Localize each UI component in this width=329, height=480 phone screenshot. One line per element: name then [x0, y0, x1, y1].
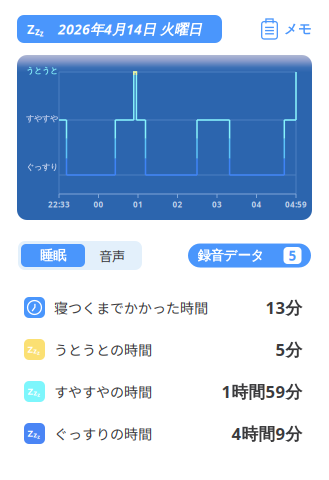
- staticText: 音声: [99, 246, 125, 265]
- button[interactable]: Z: [24, 412, 302, 454]
- button[interactable]: Z: [17, 15, 222, 43]
- button[interactable]: 音声: [85, 244, 139, 267]
- staticText: 録音データ: [197, 247, 264, 264]
- staticText: 5分: [275, 338, 302, 361]
- staticText: 04: [251, 199, 261, 210]
- staticText: ぐっすりの時間: [54, 423, 152, 444]
- staticText: 01: [133, 199, 143, 210]
- staticText: 寝つくまでかかった時間: [54, 297, 208, 318]
- staticText: 1時間59分: [221, 380, 302, 403]
- staticText: メモ: [284, 21, 312, 37]
- staticText: z: [35, 24, 40, 38]
- staticText: Z: [27, 426, 33, 439]
- staticText: ぐっすり: [26, 162, 58, 172]
- staticText: z: [39, 28, 43, 39]
- staticText: z: [33, 345, 37, 356]
- button[interactable]: Z: [24, 370, 302, 412]
- button[interactable]: メモ: [261, 19, 312, 39]
- button[interactable]: 睡眠: [21, 244, 85, 267]
- staticText: 睡眠: [40, 247, 66, 264]
- staticText: うとうと: [26, 65, 58, 76]
- staticText: z: [37, 390, 40, 398]
- staticText: z: [37, 432, 40, 440]
- staticText: すやすや: [26, 113, 58, 124]
- staticText: 04:59: [285, 199, 307, 210]
- staticText: z: [33, 387, 37, 398]
- staticText: すやすやの時間: [54, 381, 152, 402]
- staticText: Z: [27, 342, 33, 355]
- staticText: うとうとの時間: [54, 339, 152, 360]
- staticText: 5: [288, 246, 296, 265]
- staticText: 2026年4月14日 火曜日: [58, 19, 202, 39]
- staticText: Z: [27, 384, 33, 397]
- staticText: 02: [172, 199, 182, 210]
- staticText: 00: [93, 199, 103, 210]
- staticText: 4時間9分: [231, 422, 302, 445]
- staticText: 03: [212, 199, 222, 210]
- button[interactable]: Z: [24, 328, 302, 370]
- staticText: z: [37, 348, 40, 356]
- staticText: z: [33, 429, 37, 440]
- button[interactable]: 寝つくまでかかった時間: [24, 286, 302, 328]
- staticText: 22:33: [48, 199, 70, 210]
- button[interactable]: 録音データ: [188, 243, 311, 267]
- staticText: 13分: [265, 296, 302, 319]
- staticText: Z: [27, 20, 35, 38]
